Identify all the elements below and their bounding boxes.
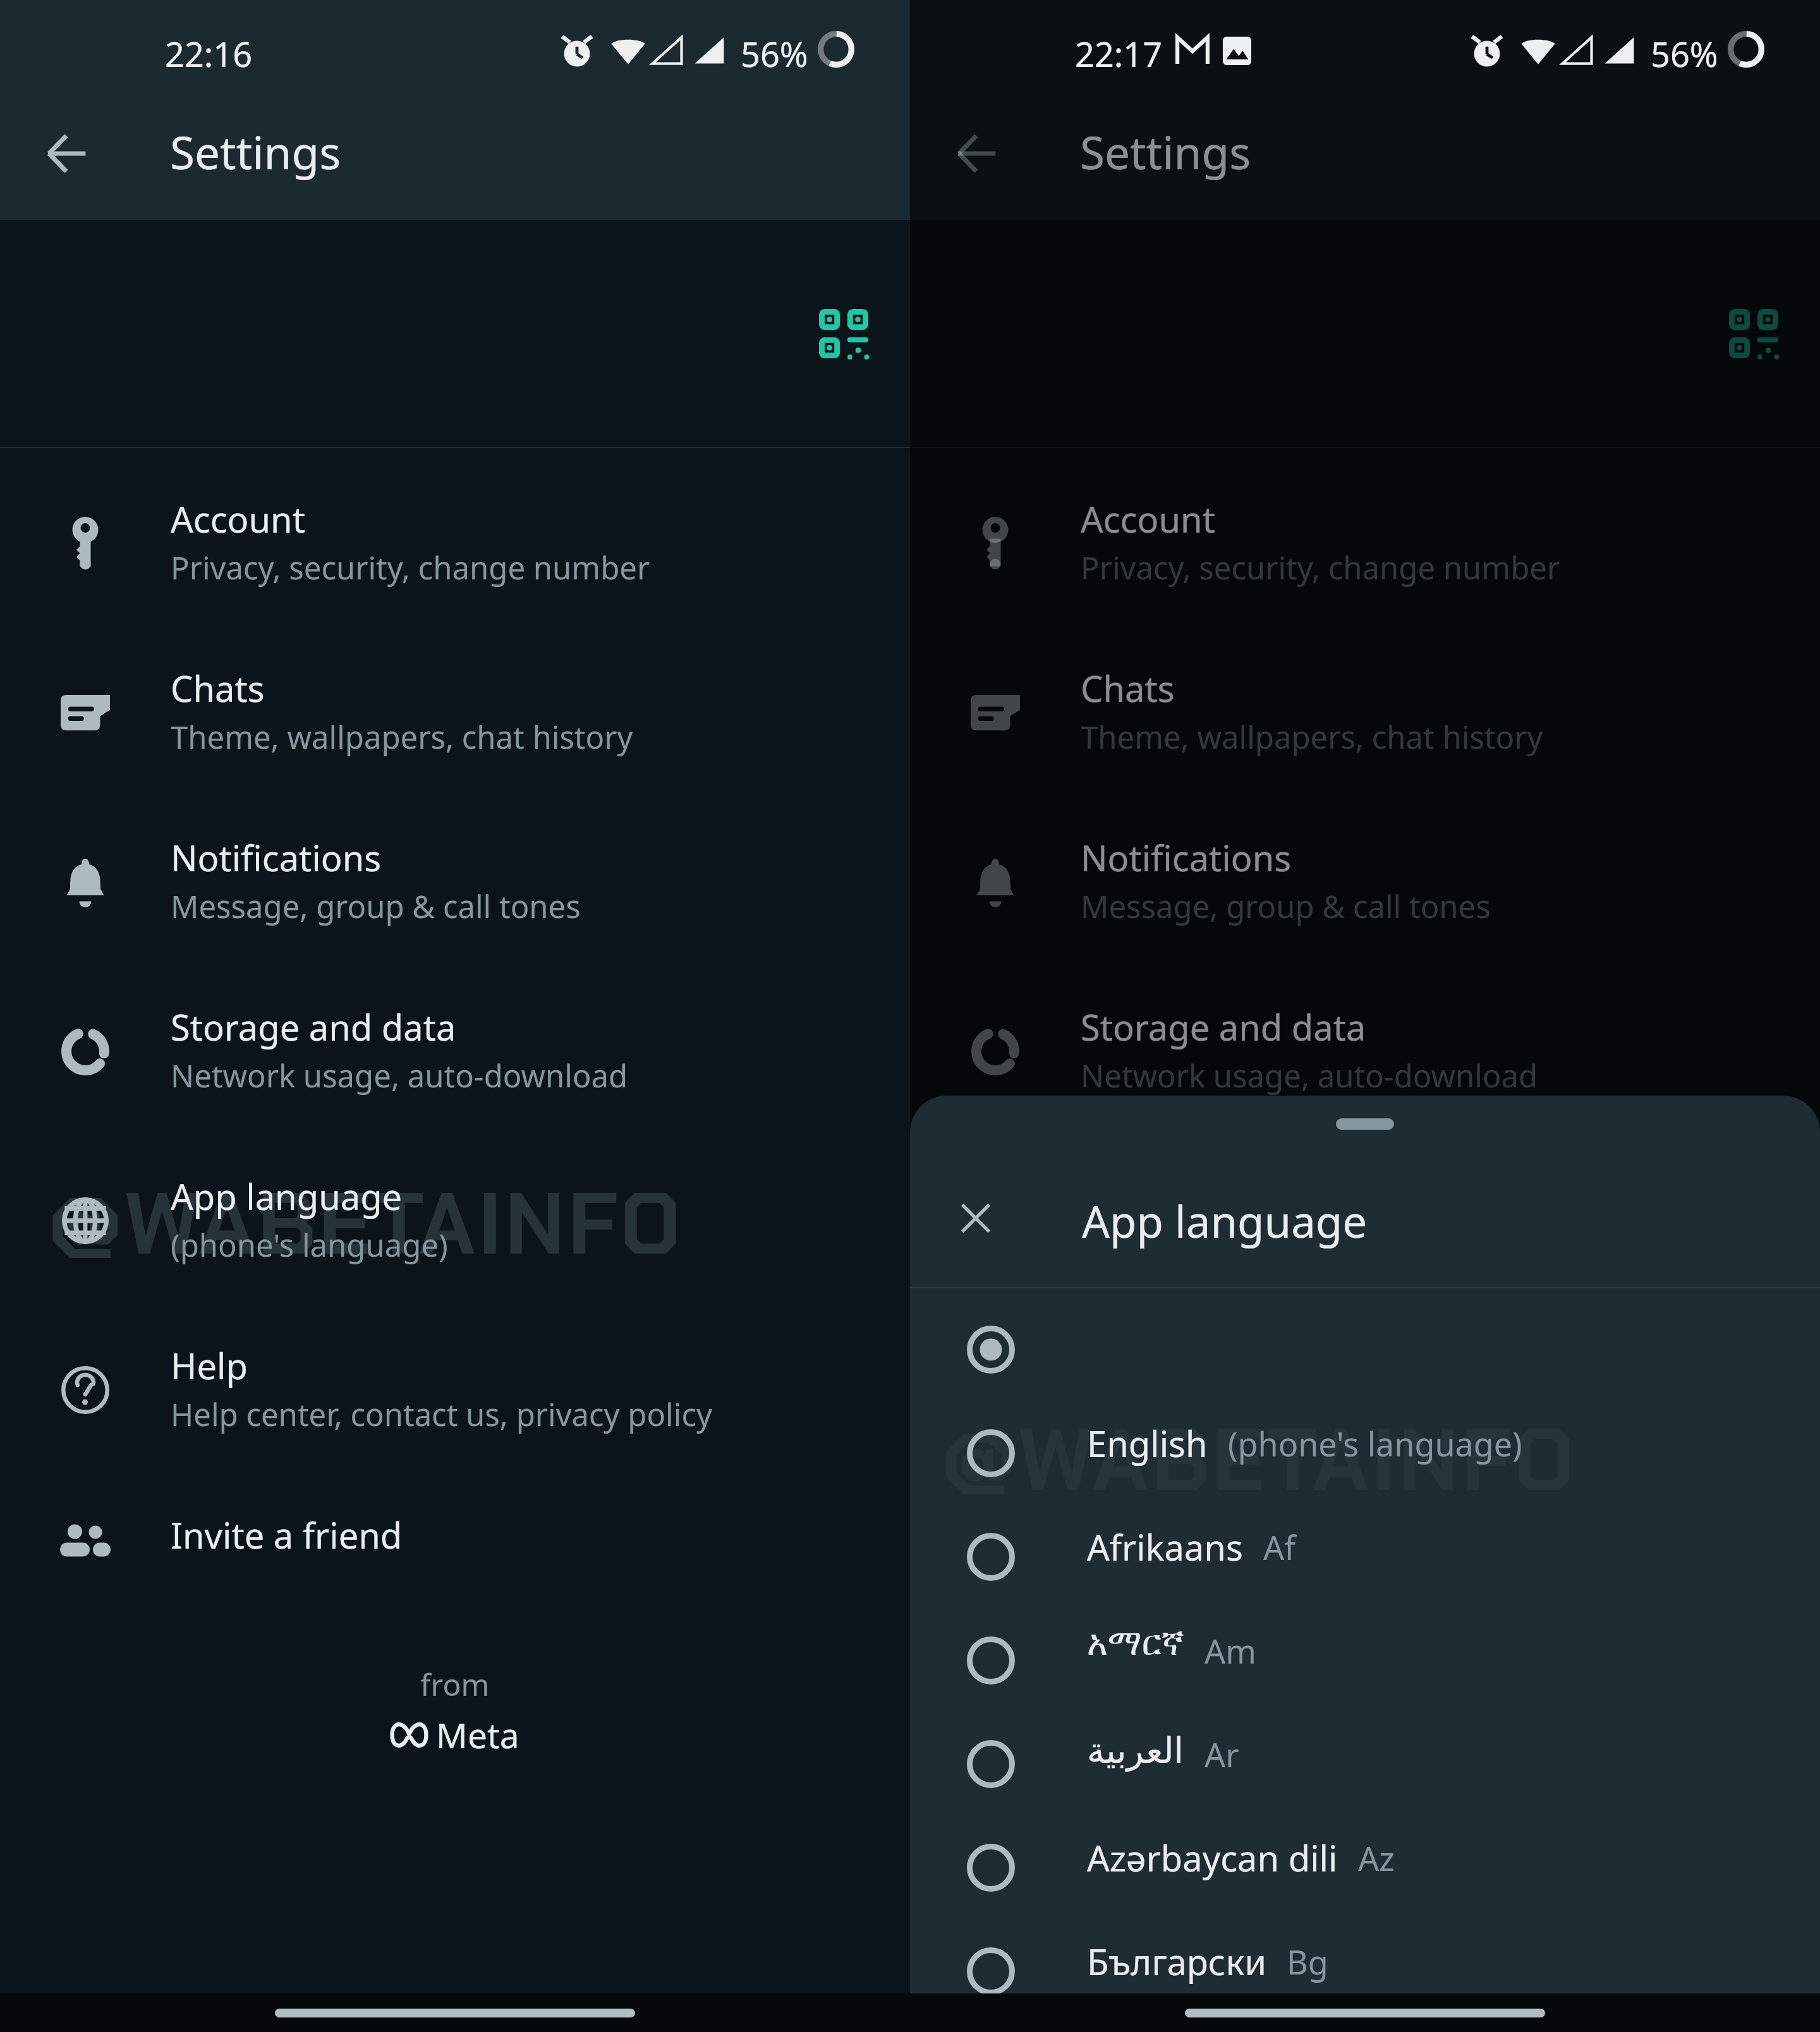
button[interactable]: Close	[938, 1180, 1014, 1256]
button[interactable]: Help	[910, 1308, 1820, 1458]
staticText: Notifications	[1081, 833, 1292, 881]
staticText: Theme, wallpapers, chat history	[1081, 716, 1543, 758]
button[interactable]: QR code	[806, 296, 882, 372]
button[interactable]: App language	[0, 1139, 910, 1289]
staticText: Help	[171, 1341, 248, 1389]
staticText: العربية	[1087, 1730, 1184, 1771]
staticText: Message, group & call tones	[1081, 885, 1491, 928]
staticText: 22:17	[1075, 30, 1163, 77]
staticText: Ar	[1204, 1732, 1239, 1777]
button[interactable]: አማርኛ	[910, 1609, 1820, 1712]
button[interactable]: Notifications	[0, 800, 910, 950]
staticText: Meta	[436, 1711, 519, 1758]
button[interactable]: Azərbaycan dili	[910, 1816, 1820, 1920]
staticText: Invite a friend	[171, 1511, 403, 1559]
staticText: 56%	[1651, 30, 1718, 77]
button[interactable]: العربية	[910, 1712, 1820, 1816]
staticText: (phone's language)	[1081, 1224, 1358, 1266]
staticText: Bg	[1287, 1939, 1328, 1984]
button[interactable]: Storage and data	[0, 969, 910, 1120]
staticText: Help center, contact us, privacy policy	[1081, 1393, 1622, 1436]
staticText: Settings	[1080, 121, 1251, 183]
button[interactable]: Invite a friend	[910, 1477, 1820, 1597]
button[interactable]: Chats	[0, 631, 910, 781]
button[interactable]: Back	[28, 116, 104, 191]
button[interactable]: Afrikaans	[910, 1505, 1820, 1609]
staticText: Chats	[171, 664, 265, 712]
staticText: Theme, wallpapers, chat history	[171, 716, 633, 758]
staticText: Invite a friend	[1081, 1511, 1313, 1559]
button[interactable]: Account	[0, 461, 910, 612]
staticText: App language	[171, 1172, 403, 1220]
staticText: Network usage, auto-download	[1081, 1055, 1538, 1097]
button[interactable]: Account	[910, 461, 1820, 612]
staticText: English	[1087, 1419, 1208, 1467]
staticText: Notifications	[171, 833, 382, 881]
staticText: App language	[1082, 1191, 1368, 1250]
staticText: Storage and data	[1081, 1003, 1366, 1051]
staticText: Azərbaycan dili	[1087, 1834, 1338, 1882]
staticText: Am	[1204, 1628, 1256, 1673]
button[interactable]: Help	[0, 1308, 910, 1458]
button[interactable]: Back	[938, 116, 1014, 191]
staticText: Settings	[170, 121, 341, 183]
button[interactable]: QR code	[1716, 296, 1792, 372]
staticText: 56%	[741, 30, 808, 77]
staticText: Af	[1263, 1525, 1296, 1569]
staticText: Privacy, security, change number	[171, 547, 650, 589]
staticText: Chats	[1081, 664, 1175, 712]
staticText: @WABETAINFO	[959, 1424, 1594, 1535]
staticText: Privacy, security, change number	[1081, 547, 1560, 589]
staticText: Account	[1081, 495, 1215, 543]
staticText: Storage and data	[171, 1003, 456, 1051]
button[interactable]: Storage and data	[910, 969, 1820, 1120]
staticText: from	[420, 1664, 490, 1705]
staticText: Account	[171, 495, 305, 543]
button[interactable]: Chats	[910, 631, 1820, 781]
button[interactable]: Notifications	[910, 800, 1820, 950]
staticText: (phone's language)	[171, 1224, 448, 1266]
staticText: @WABETAINFO	[49, 1168, 684, 1280]
staticText: Az	[1358, 1835, 1395, 1880]
staticText: (phone's language)	[1228, 1421, 1522, 1466]
staticText: App language	[1081, 1172, 1313, 1220]
staticText: @WABETAINFO	[943, 1405, 1577, 1516]
staticText: አማርኛ	[1087, 1626, 1184, 1662]
staticText: Message, group & call tones	[171, 885, 581, 928]
staticText: Help center, contact us, privacy policy	[171, 1393, 712, 1436]
button[interactable]: English	[910, 1401, 1820, 1505]
staticText: Network usage, auto-download	[171, 1055, 628, 1097]
button[interactable]	[910, 1298, 1820, 1401]
staticText: 22:16	[165, 30, 253, 77]
button[interactable]: Български	[910, 1920, 1820, 2023]
button[interactable]: Invite a friend	[0, 1477, 910, 1597]
button[interactable]: App language	[910, 1139, 1820, 1289]
staticText: Afrikaans	[1087, 1523, 1243, 1571]
staticText: Български	[1087, 1937, 1266, 1985]
